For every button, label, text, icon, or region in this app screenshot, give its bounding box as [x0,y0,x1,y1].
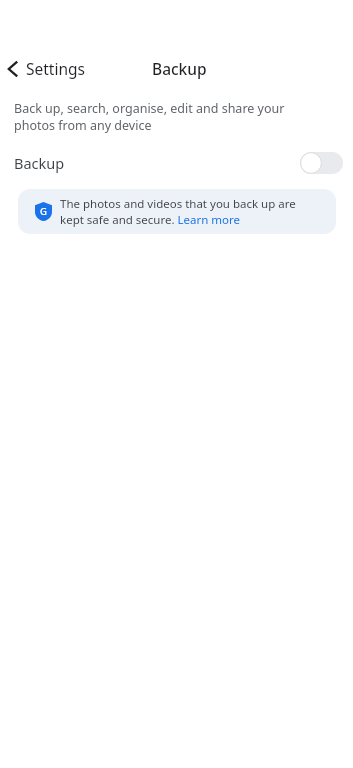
staticText: Back up, search, organise, edit and shar… [14,100,327,134]
button[interactable]: Back [0,54,93,83]
staticText: The photos and videos that you back up a… [60,196,322,227]
staticText: Backup [14,153,65,173]
staticText: Backup [152,58,207,79]
button[interactable]: G [18,189,336,234]
button[interactable]: Backup toggle [300,152,343,174]
button[interactable]: Backup [0,146,353,180]
staticText: G [40,205,47,218]
other: Back [6,61,20,77]
staticText: Settings [26,58,85,79]
